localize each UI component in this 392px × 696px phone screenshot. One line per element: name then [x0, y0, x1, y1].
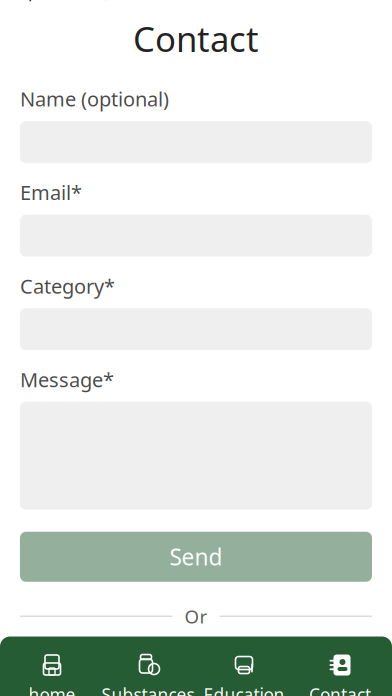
staticText: Name (optional) — [20, 85, 169, 112]
button[interactable]: home — [4, 643, 100, 696]
staticText: Message* — [20, 366, 114, 393]
button[interactable]: Send — [20, 532, 372, 582]
staticText: Category* — [20, 273, 115, 299]
button[interactable]: Substances — [100, 643, 196, 696]
staticText: Contact — [133, 15, 259, 61]
button[interactable]: Contact — [292, 643, 388, 696]
staticText: Operador — [14, 0, 94, 2]
button[interactable]: Education — [196, 643, 292, 696]
staticText: Send — [169, 542, 222, 572]
staticText: Education — [203, 683, 284, 696]
staticText: Or — [184, 604, 207, 628]
staticText: Email* — [20, 179, 82, 206]
staticText: Contact — [309, 683, 371, 696]
staticText: Substances — [101, 683, 194, 696]
staticText: home — [28, 683, 75, 696]
